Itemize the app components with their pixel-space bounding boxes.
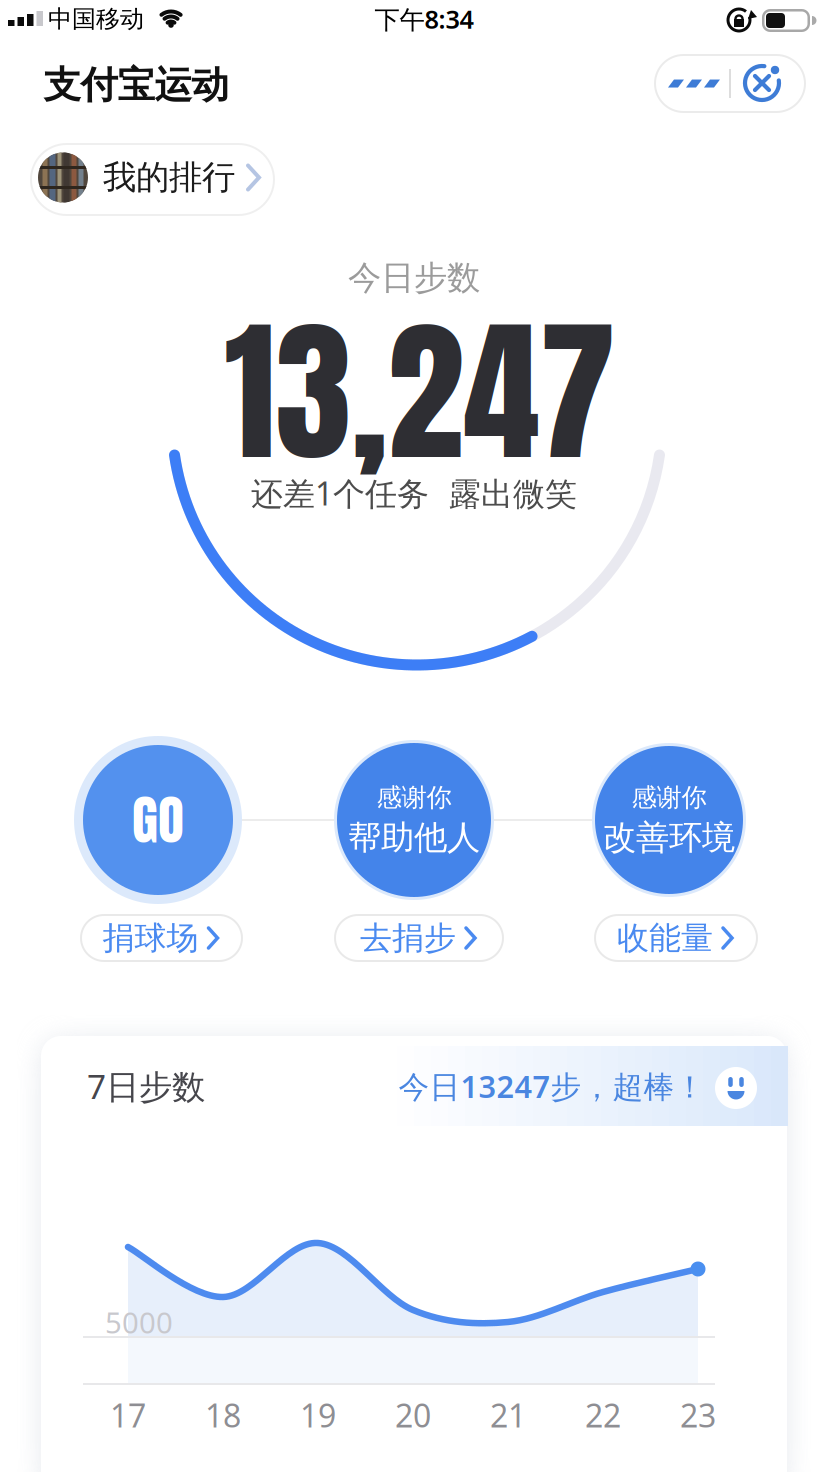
- button[interactable]: GO: [74, 736, 242, 904]
- staticText: 我的排行: [103, 157, 235, 198]
- staticText: 5000: [105, 1302, 173, 1341]
- staticText: 改善环境: [603, 817, 735, 858]
- button[interactable]: 捐球场: [80, 914, 243, 962]
- staticText: 19: [300, 1394, 336, 1436]
- button[interactable]: 收能量: [594, 914, 758, 962]
- staticText: 18: [205, 1394, 241, 1436]
- staticText: 7日步数: [87, 1064, 205, 1108]
- button[interactable]: 我的排行: [30, 143, 275, 216]
- staticText: 中国移动: [48, 4, 144, 34]
- staticText: 23: [680, 1394, 716, 1436]
- button[interactable]: 更多: [654, 54, 730, 113]
- button[interactable]: 感谢你: [592, 743, 746, 897]
- staticText: 捐球场: [102, 918, 198, 958]
- staticText: 感谢你: [376, 782, 451, 813]
- staticText: 支付宝运动: [43, 62, 228, 108]
- staticText: 感谢你: [631, 782, 706, 813]
- staticText: 收能量: [617, 918, 713, 958]
- staticText: 13,247: [224, 277, 615, 507]
- button[interactable]: 去捐步: [334, 914, 504, 962]
- staticText: 还差1个任务 露出微笑: [251, 472, 577, 514]
- staticText: 22: [585, 1394, 621, 1436]
- staticText: 20: [395, 1394, 431, 1436]
- staticText: GO: [132, 780, 184, 860]
- staticText: 去捐步: [360, 918, 456, 958]
- button[interactable]: 关闭: [727, 54, 803, 113]
- button[interactable]: 感谢你: [334, 740, 494, 900]
- staticText: 今日步数: [348, 257, 480, 298]
- staticText: 帮助他人: [348, 817, 480, 858]
- staticText: 今日13247步，超棒！: [398, 1066, 705, 1106]
- staticText: 17: [110, 1394, 146, 1436]
- staticText: 下午8:34: [374, 2, 473, 36]
- staticText: 21: [490, 1394, 526, 1436]
